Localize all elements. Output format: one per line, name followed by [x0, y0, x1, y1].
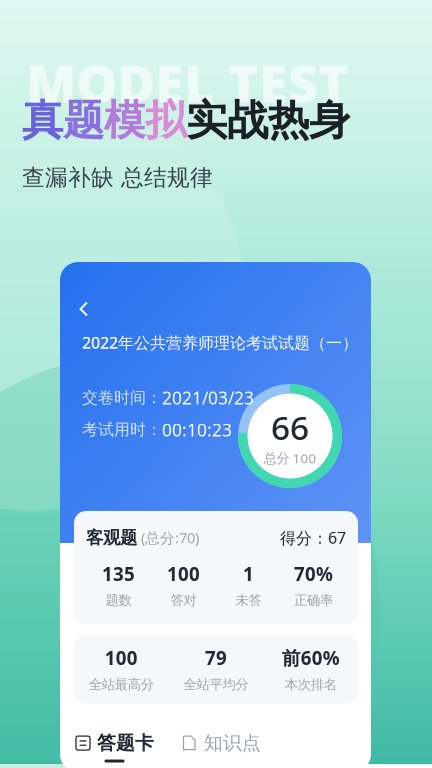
staticText: 未答 [235, 592, 261, 608]
staticText: 题 [63, 95, 104, 146]
staticText: 2022年公共营养师理论考试试题（一） [82, 332, 358, 353]
staticText: 模 [104, 95, 145, 146]
staticText: 全站最高分 [89, 676, 154, 693]
staticText: 查漏补缺 总结规律 [22, 164, 213, 192]
staticText: MODEL TEST [26, 48, 349, 117]
staticText: 题数 [105, 592, 131, 608]
staticText: 66 [271, 405, 309, 449]
staticText: 全站平均分 [183, 676, 248, 693]
staticText: 79 [205, 645, 227, 670]
staticText: 前60% [282, 645, 340, 670]
staticText: 2021/03/23 [162, 386, 254, 409]
staticText: 考试用时： [82, 420, 162, 440]
staticText: 100 [167, 561, 200, 586]
staticText: 知识点 [204, 732, 261, 754]
staticText: 00:10:23 [162, 418, 232, 441]
staticText: 答题卡 [97, 732, 154, 754]
staticText: 本次排名 [285, 676, 337, 693]
staticText: 实战热身 [186, 95, 350, 146]
staticText: 100 [105, 645, 138, 670]
staticText: 总分 100 [263, 449, 316, 467]
staticText: 70% [294, 561, 333, 586]
staticText: 135 [102, 561, 135, 586]
staticText: 正确率 [294, 592, 333, 608]
staticText: (总分:70) [137, 528, 199, 547]
staticText: 真 [22, 95, 63, 146]
staticText: 得分：67 [280, 527, 346, 548]
staticText: 客观题 [86, 527, 137, 548]
staticText: 拟 [145, 95, 186, 146]
staticText: 交卷时间： [82, 388, 162, 408]
button[interactable]: 答题卡 [75, 732, 154, 762]
staticText: 答对 [170, 592, 196, 608]
button[interactable]: 知识点 [182, 732, 261, 762]
button[interactable]: Back [69, 296, 99, 322]
staticText: 1 [243, 561, 254, 586]
